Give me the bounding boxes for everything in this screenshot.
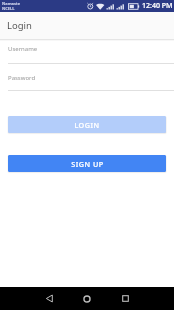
- button[interactable]: LOGIN: [8, 116, 166, 133]
- button[interactable]: Recents: [113, 287, 137, 310]
- button[interactable]: Username: [0, 45, 174, 64]
- staticText: LOGIN: [74, 120, 100, 130]
- staticText: Login: [7, 19, 32, 32]
- staticText: Username: [8, 45, 38, 53]
- staticText: SIGN UP: [71, 159, 104, 169]
- button[interactable]: SIGN UP: [8, 155, 166, 172]
- staticText: Namaste: [2, 1, 21, 6]
- button[interactable]: Password: [0, 74, 174, 91]
- staticText: NCELL: [2, 6, 15, 11]
- button[interactable]: Home: [75, 287, 99, 310]
- staticText: 12:40 PM: [142, 1, 173, 11]
- button[interactable]: Back: [37, 287, 61, 310]
- staticText: Password: [8, 74, 36, 82]
